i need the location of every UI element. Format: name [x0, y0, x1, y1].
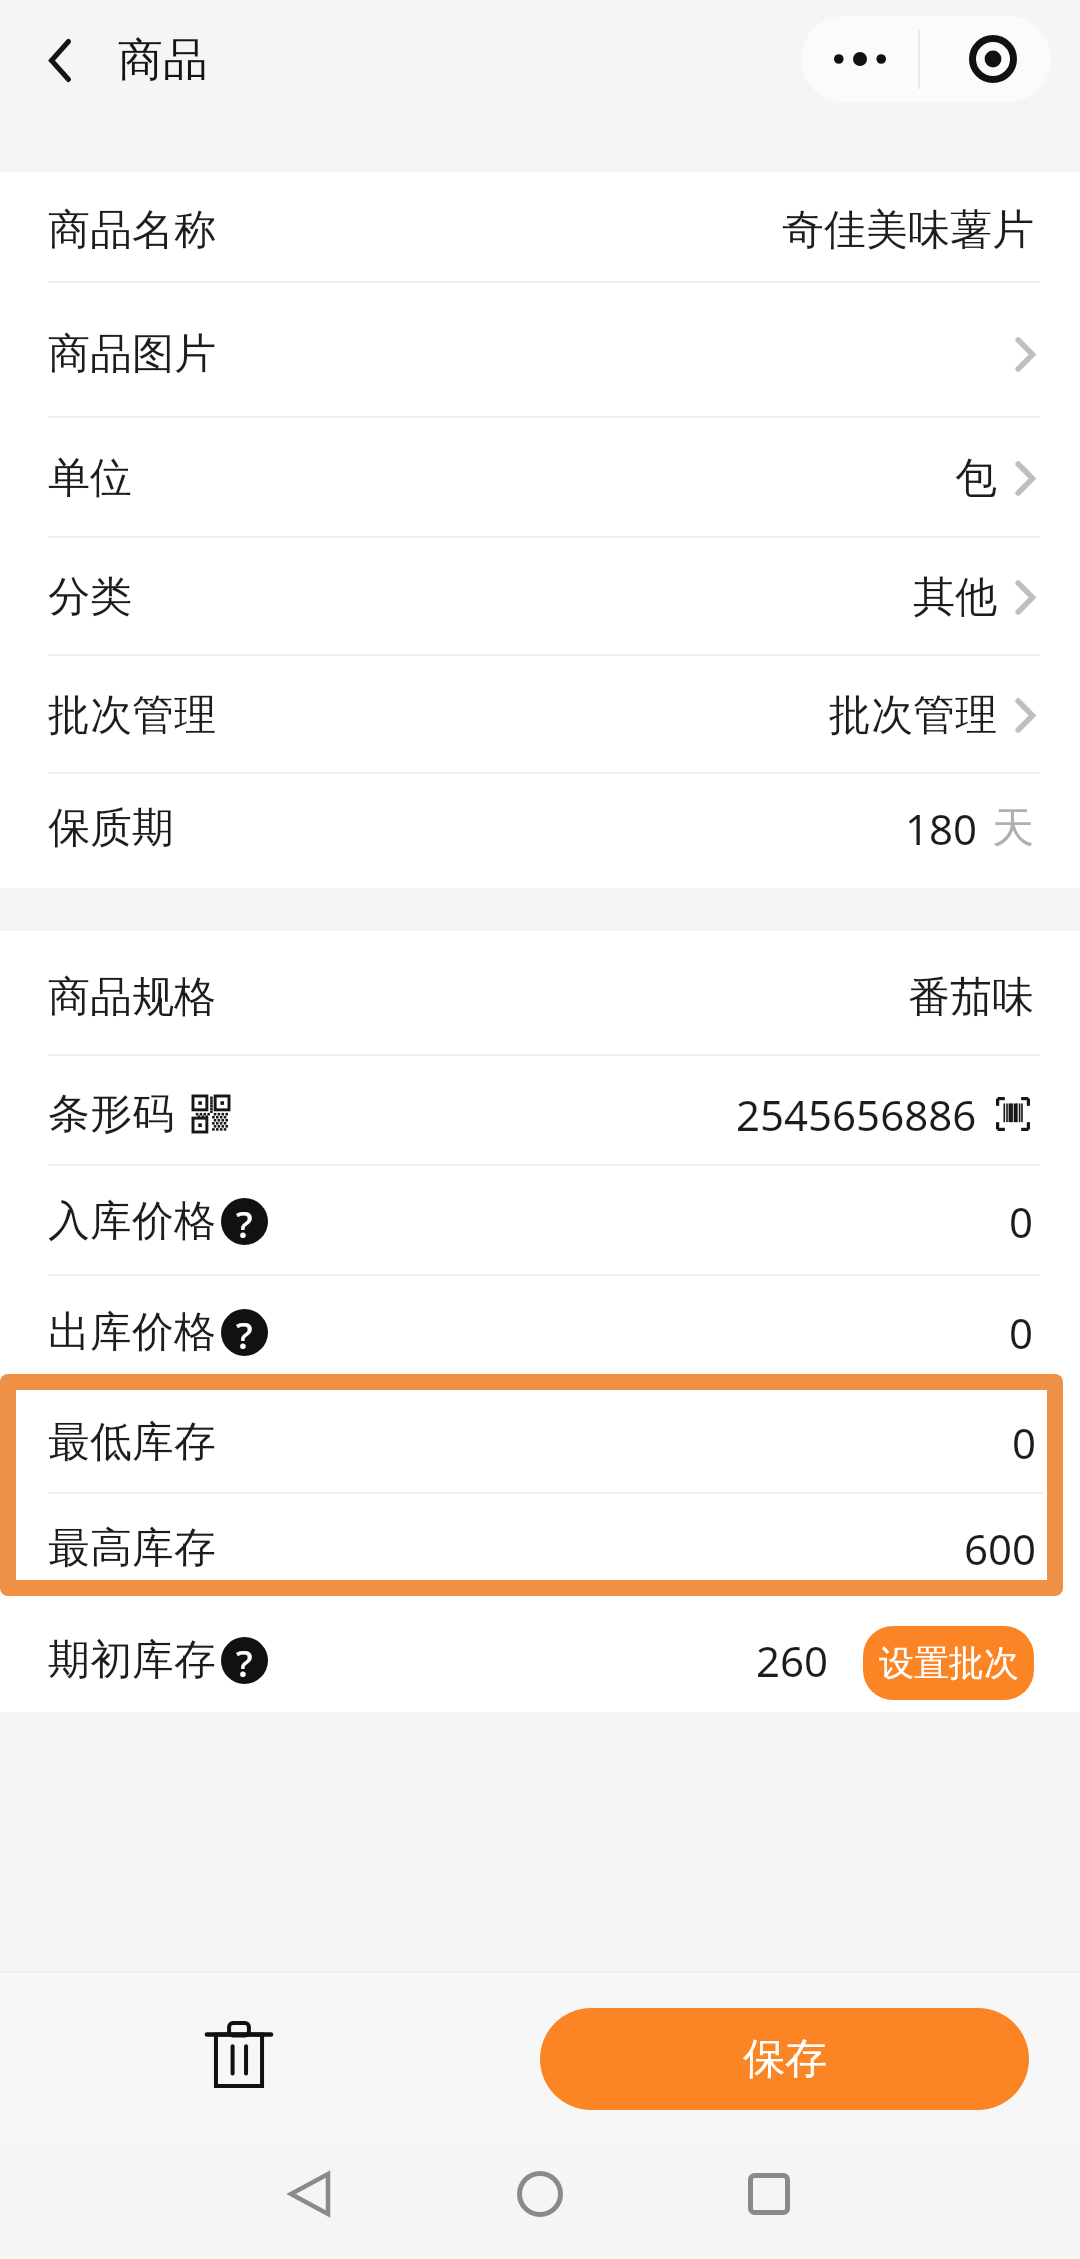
- staticText: 奇佳美味薯片: [782, 204, 1034, 257]
- button[interactable]: Home: [495, 2149, 585, 2239]
- button[interactable]: 最低库存: [16, 1390, 1047, 1494]
- button[interactable]: 商品规格: [0, 931, 1080, 1056]
- button[interactable]: 设置批次: [863, 1626, 1034, 1700]
- staticText: 条形码: [48, 1088, 174, 1141]
- button[interactable]: 出库价格: [0, 1276, 1080, 1374]
- button[interactable]: 单位: [0, 418, 1080, 538]
- staticText: 商品名称: [48, 204, 216, 257]
- staticText: ?: [236, 1637, 253, 1684]
- button[interactable]: 保质期: [0, 774, 1080, 888]
- button[interactable]: 保存: [540, 2008, 1029, 2110]
- staticText: 期初库存: [48, 1634, 216, 1687]
- button[interactable]: 最高库存: [16, 1494, 1047, 1580]
- staticText: 0: [1012, 1414, 1037, 1471]
- button[interactable]: 条形码: [0, 1056, 1080, 1166]
- staticText: 600: [964, 1520, 1037, 1577]
- staticText: 2545656886: [736, 1086, 977, 1143]
- button[interactable]: 商品名称: [0, 172, 1080, 283]
- staticText: 0: [1009, 1304, 1034, 1361]
- staticText: 批次管理: [48, 689, 216, 742]
- button[interactable]: Back: [265, 2149, 355, 2239]
- button[interactable]: 入库价格: [0, 1166, 1080, 1276]
- staticText: 商品图片: [48, 328, 216, 381]
- staticText: 保质期: [48, 802, 174, 855]
- button[interactable]: 分类: [0, 538, 1080, 656]
- staticText: 商品规格: [48, 971, 216, 1024]
- staticText: 商品: [118, 32, 208, 89]
- staticText: 260: [756, 1632, 829, 1689]
- staticText: 包: [955, 452, 997, 505]
- staticText: ?: [236, 1198, 253, 1245]
- button[interactable]: 商品图片: [0, 283, 1080, 418]
- staticText: 180: [905, 800, 978, 857]
- staticText: 批次管理: [829, 689, 997, 742]
- staticText: 0: [1009, 1193, 1034, 1250]
- staticText: ?: [236, 1309, 253, 1356]
- button[interactable]: Close mini program: [920, 16, 1051, 102]
- staticText: 最高库存: [48, 1522, 216, 1575]
- staticText: 最低库存: [48, 1416, 216, 1469]
- staticText: 番茄味: [908, 971, 1034, 1024]
- button[interactable]: Recent apps: [724, 2149, 814, 2239]
- staticText: 天: [992, 802, 1034, 855]
- staticText: 其他: [913, 571, 997, 624]
- button[interactable]: Delete: [184, 1999, 294, 2109]
- staticText: 分类: [48, 571, 132, 624]
- button[interactable]: 期初库存: [0, 1596, 1080, 1712]
- button[interactable]: Back: [24, 24, 96, 96]
- staticText: 入库价格: [48, 1195, 216, 1248]
- staticText: 保存: [743, 2033, 827, 2086]
- staticText: 出库价格: [48, 1306, 216, 1359]
- staticText: 设置批次: [879, 1641, 1019, 1685]
- button[interactable]: More options: [801, 16, 918, 102]
- button[interactable]: 批次管理: [0, 656, 1080, 774]
- staticText: 单位: [48, 452, 132, 505]
